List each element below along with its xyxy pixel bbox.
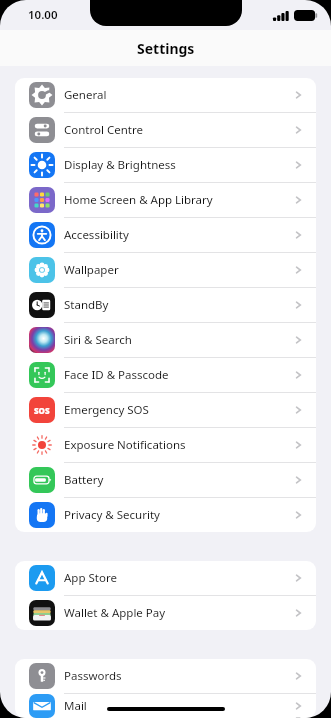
button[interactable]: Accessibility bbox=[15, 218, 316, 252]
staticText: Display & Brightness bbox=[64, 157, 176, 173]
button[interactable]: Wallet & Apple Pay bbox=[15, 596, 316, 630]
button[interactable]: Display & Brightness bbox=[15, 148, 316, 182]
button[interactable]: Mail bbox=[15, 694, 316, 718]
staticText: General bbox=[64, 87, 107, 103]
staticText: Passwords bbox=[64, 668, 122, 684]
button[interactable]: Battery bbox=[15, 463, 316, 497]
staticText: Face ID & Passcode bbox=[64, 367, 169, 383]
staticText: Privacy & Security bbox=[64, 507, 160, 523]
button[interactable]: App Store bbox=[15, 561, 316, 595]
button[interactable]: Home Screen & App Library bbox=[15, 183, 316, 217]
staticText: Battery bbox=[64, 472, 104, 488]
staticText: Settings bbox=[137, 39, 195, 58]
button[interactable]: Control Centre bbox=[15, 113, 316, 147]
staticText: Accessibility bbox=[64, 227, 129, 243]
staticText: Exposure Notifications bbox=[64, 437, 186, 453]
staticText: Siri & Search bbox=[64, 332, 132, 348]
staticText: App Store bbox=[64, 570, 117, 586]
staticText: Emergency SOS bbox=[64, 402, 149, 418]
staticText: Mail bbox=[64, 698, 87, 714]
staticText: StandBy bbox=[64, 297, 109, 313]
button[interactable]: Siri & Search bbox=[15, 323, 316, 357]
button[interactable]: SOS bbox=[15, 393, 316, 427]
button[interactable]: General bbox=[15, 78, 316, 112]
staticText: Home Screen & App Library bbox=[64, 192, 213, 208]
staticText: SOS bbox=[34, 405, 50, 416]
button[interactable]: StandBy bbox=[15, 288, 316, 322]
button[interactable]: Face ID & Passcode bbox=[15, 358, 316, 392]
staticText: Wallpaper bbox=[64, 262, 119, 278]
staticText: Wallet & Apple Pay bbox=[64, 605, 166, 621]
staticText: 10.00 bbox=[28, 7, 58, 23]
button[interactable]: Passwords bbox=[15, 659, 316, 693]
button[interactable]: Exposure Notifications bbox=[15, 428, 316, 462]
button[interactable]: Privacy & Security bbox=[15, 498, 316, 532]
button[interactable]: Wallpaper bbox=[15, 253, 316, 287]
staticText: Control Centre bbox=[64, 122, 143, 138]
